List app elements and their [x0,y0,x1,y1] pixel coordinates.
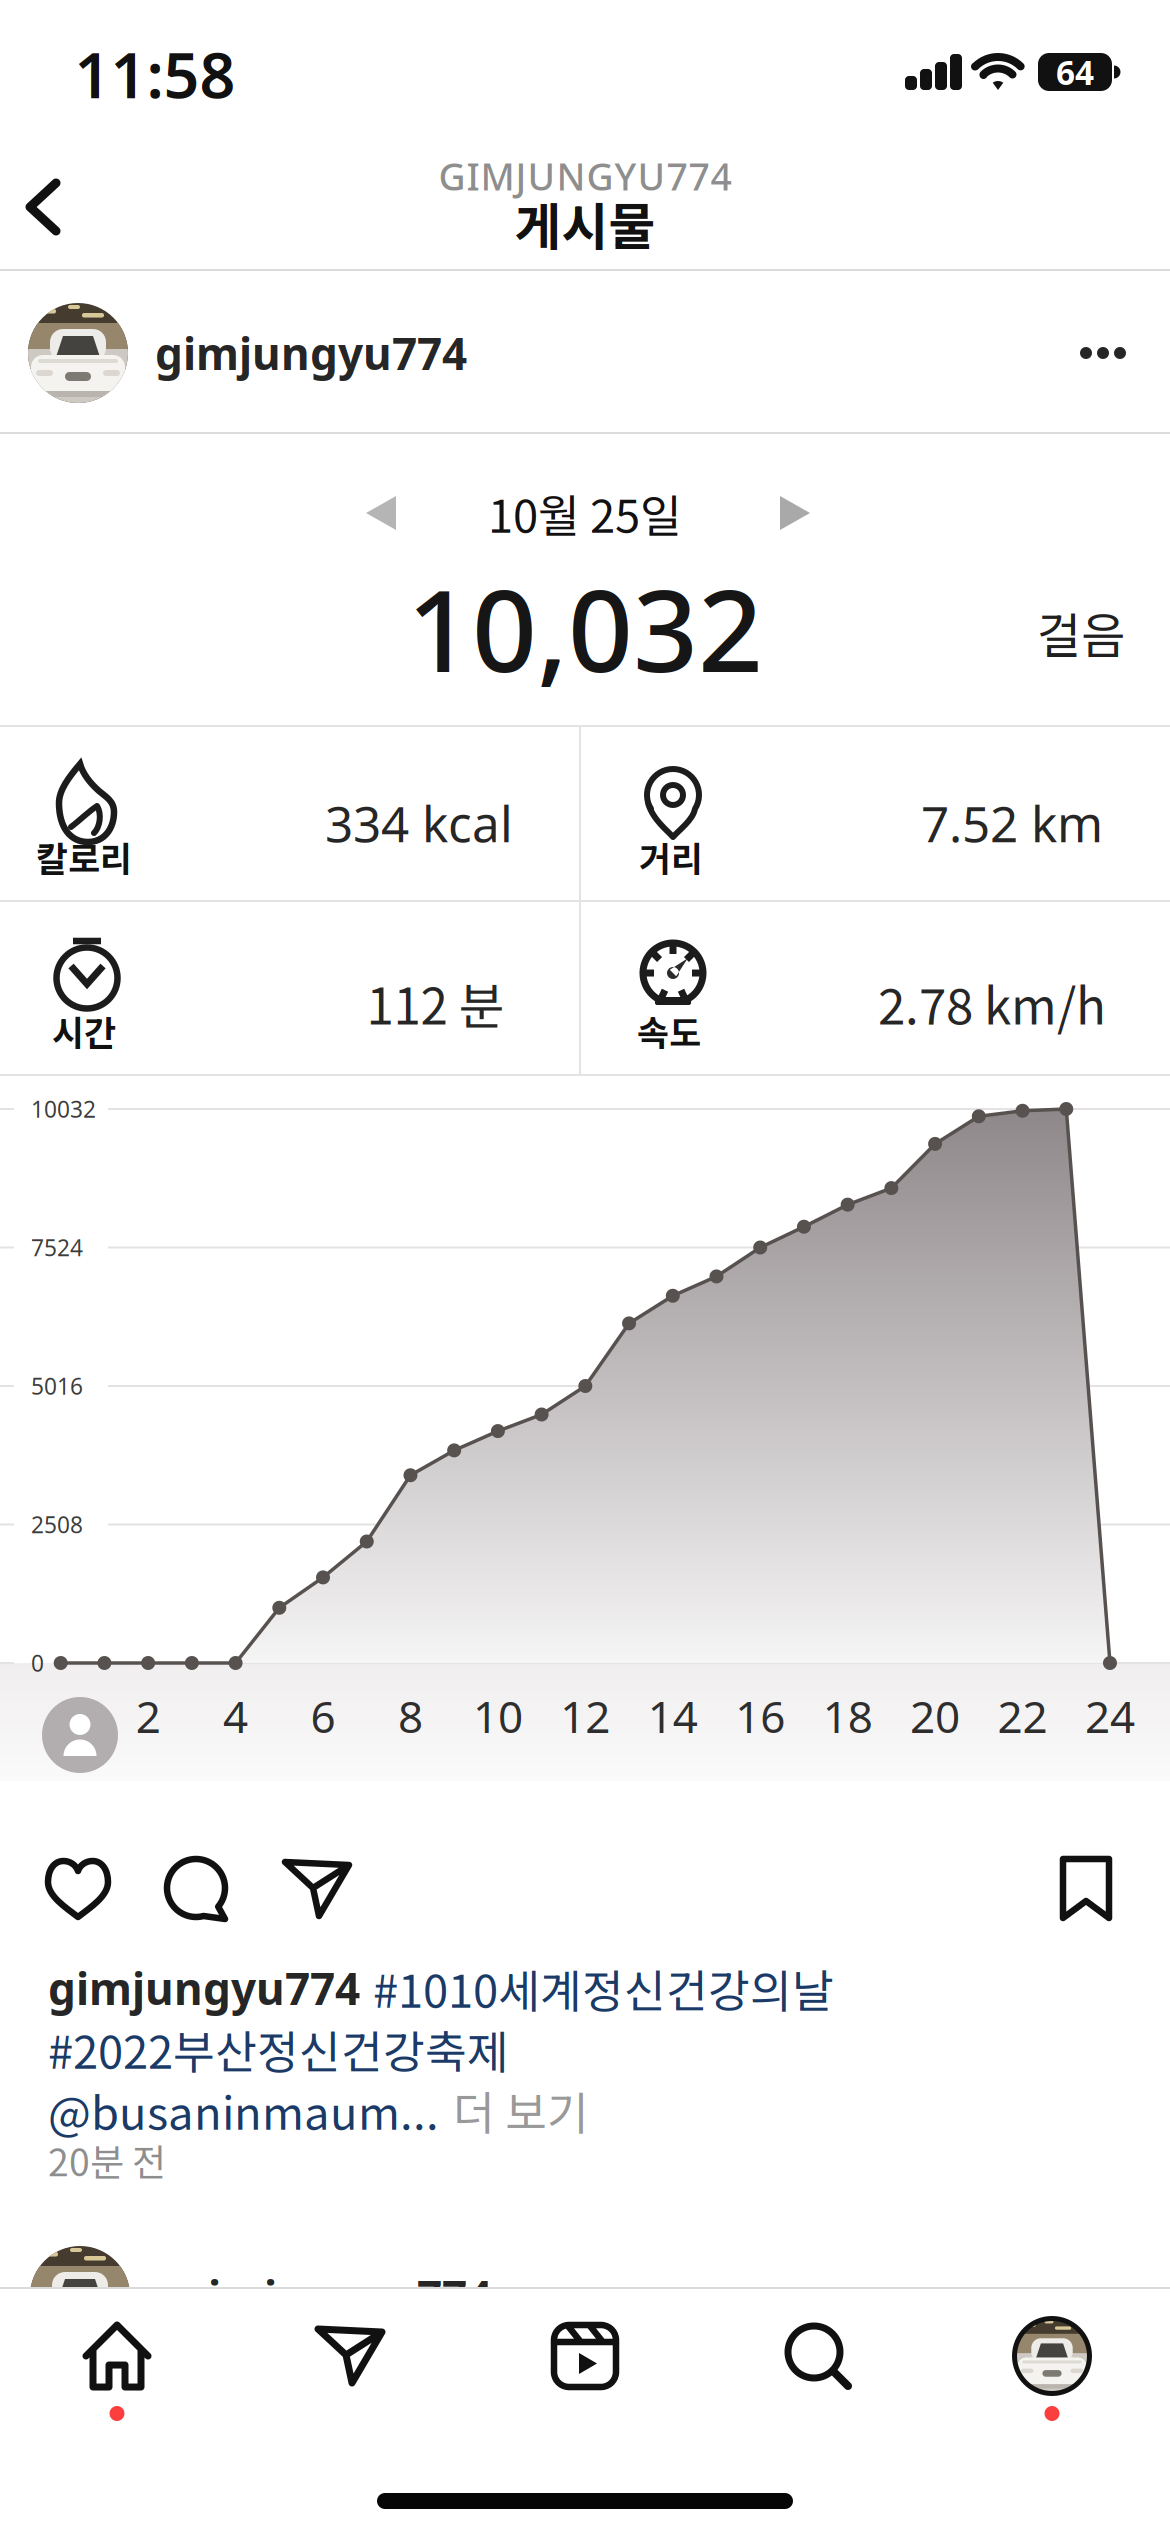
button[interactable]: gimjungyu774 profile [28,303,128,403]
staticText: 334 kcal [325,790,513,856]
button[interactable]: gimjungyu774 [48,1959,360,2017]
staticText: 2 [136,1687,161,1745]
staticText: gimjungyu774 [48,1959,360,2017]
staticText: 20분 전 [48,2133,166,2187]
button[interactable]: Like [45,1858,111,1920]
button[interactable]: #1010세계정신건강의날 [373,1955,834,2021]
staticText: 2.78 km/h [878,967,1106,1039]
staticText: 22 [997,1687,1047,1745]
staticText: 7524 [31,1232,83,1262]
staticText: 11:58 [74,32,235,116]
button[interactable]: Profile [1012,2316,1092,2396]
staticText: 10032 [31,1094,96,1124]
button[interactable]: #2022부산정신건강축제 [48,2016,509,2082]
button[interactable]: @busaninmaum... [48,2077,439,2143]
staticText: 속도 [637,1006,701,1056]
button[interactable]: Messages [316,2326,384,2386]
button[interactable]: Home [84,2323,150,2389]
staticText: 2508 [31,1509,83,1539]
staticText: 4 [223,1687,248,1745]
staticText: 20 [910,1687,960,1745]
staticText: 칼로리 [36,832,132,882]
button[interactable]: Next day [773,494,811,532]
staticText: 18 [823,1687,873,1745]
staticText: 5016 [31,1371,83,1401]
staticText: 10,032 [407,553,763,703]
staticText: 12 [560,1687,610,1745]
staticText: @busaninmaum... [48,2077,439,2143]
staticText: 0 [31,1648,44,1678]
staticText: 시간 [52,1006,116,1056]
button[interactable]: Search [785,2323,851,2389]
staticText: 7.52 km [921,790,1103,856]
staticText: GIMJUNGYU774 [438,151,731,201]
button[interactable]: Share [283,1859,351,1919]
staticText: 16 [735,1687,785,1745]
staticText: 더 보기 [453,2077,589,2143]
staticText: 64 [1056,50,1094,94]
staticText: 24 [1085,1687,1135,1745]
button[interactable]: Tagged people [42,1697,118,1773]
staticText: 10월 25일 [488,480,682,546]
staticText: #2022부산정신건강축제 [48,2016,509,2082]
button[interactable]: Comment [164,1856,230,1922]
button[interactable]: 더 보기 [453,2077,589,2143]
staticText: 10 [473,1687,523,1745]
staticText: 걸음 [1037,597,1125,667]
button[interactable]: gimjungyu774 [155,324,467,382]
button[interactable]: Reels [552,2323,618,2389]
staticText: gimjungyu774 [155,324,467,382]
button[interactable]: Back [10,171,82,243]
button[interactable]: More options [1070,320,1136,386]
staticText: 게시물 [514,186,655,260]
staticText: 14 [648,1687,698,1745]
button[interactable]: Save [1060,1856,1112,1922]
staticText: 8 [398,1687,423,1745]
staticText: gimjungyu774 [180,2267,492,2325]
button[interactable]: Previous day [365,494,403,532]
staticText: #1010세계정신건강의날 [373,1955,834,2021]
staticText: 112 분 [366,967,503,1039]
staticText: 거리 [639,832,703,882]
staticText: 6 [310,1687,335,1745]
